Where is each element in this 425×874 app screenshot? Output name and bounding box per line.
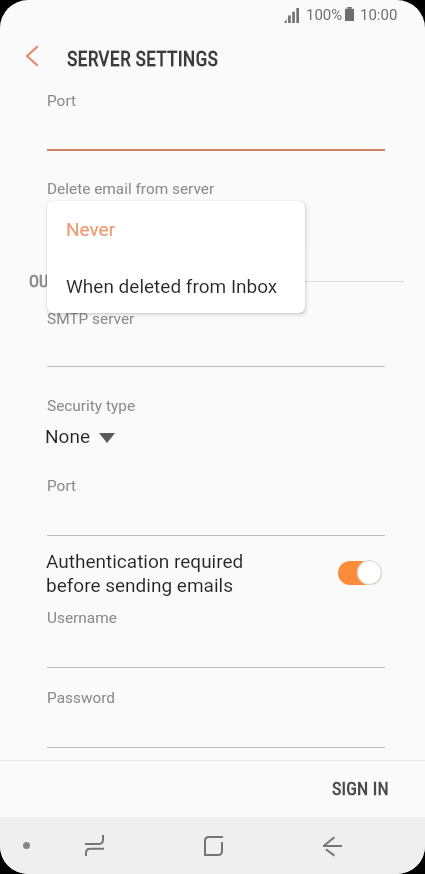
button[interactable]: Back xyxy=(294,817,370,874)
button[interactable]: SIGN IN xyxy=(310,763,410,813)
staticText: SIGN IN xyxy=(332,778,389,799)
staticText: When deleted from Inbox xyxy=(66,275,278,297)
button[interactable]: Recent apps xyxy=(56,817,132,874)
staticText: Never xyxy=(66,218,116,240)
staticText: SERVER SETTINGS xyxy=(67,47,219,71)
staticText: Port xyxy=(47,477,77,495)
staticText: 100% xyxy=(306,6,343,24)
button[interactable]: Home xyxy=(175,817,251,874)
staticText: Delete email from server xyxy=(47,180,215,198)
staticText: Password xyxy=(47,689,115,707)
staticText: Port xyxy=(47,92,77,110)
staticText: OUTGOING SERVER xyxy=(29,272,156,291)
button[interactable]: When deleted from Inbox xyxy=(47,258,305,313)
button[interactable]: Navigate up xyxy=(14,38,50,74)
staticText: 10:00 xyxy=(360,6,398,24)
staticText: Authentication required before sending e… xyxy=(46,550,244,597)
staticText: SMTP server xyxy=(47,310,135,328)
staticText: Username xyxy=(47,609,117,627)
staticText: Security type xyxy=(47,397,136,415)
button[interactable]: Never xyxy=(47,201,305,257)
button[interactable]: Authentication required toggle xyxy=(338,560,383,586)
staticText: None xyxy=(45,425,90,447)
